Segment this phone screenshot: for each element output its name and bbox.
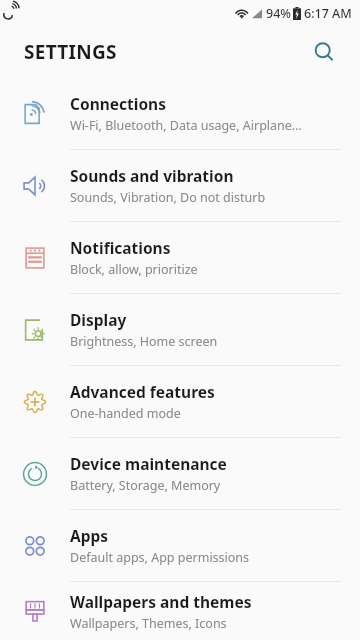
button[interactable]: Advanced features: [0, 366, 360, 437]
staticText: Wallpapers, Themes, Icons: [70, 615, 227, 632]
button[interactable]: Apps: [0, 510, 360, 581]
staticText: Battery, Storage, Memory: [70, 477, 221, 494]
button[interactable]: Device maintenance: [0, 438, 360, 509]
staticText: Brightness, Home screen: [70, 333, 218, 350]
staticText: Display: [70, 309, 127, 330]
button[interactable]: Connections: [0, 78, 360, 149]
staticText: Apps: [70, 525, 109, 546]
staticText: Connections: [70, 93, 166, 114]
staticText: Device maintenance: [70, 453, 227, 474]
staticText: SETTINGS: [24, 39, 117, 65]
button[interactable]: Sounds and vibration: [0, 150, 360, 221]
staticText: Default apps, App permissions: [70, 549, 250, 566]
staticText: Sounds, Vibration, Do not disturb: [70, 189, 266, 206]
staticText: Wallpapers and themes: [70, 591, 252, 612]
staticText: Notifications: [70, 237, 171, 258]
button[interactable]: Wallpapers and themes: [0, 582, 360, 640]
staticText: Sounds and vibration: [70, 165, 234, 186]
button[interactable]: Notifications: [0, 222, 360, 293]
staticText: One-handed mode: [70, 405, 181, 422]
button[interactable]: Search: [304, 32, 344, 72]
staticText: Wi-Fi, Bluetooth, Data usage, Airplane…: [70, 117, 302, 134]
staticText: Advanced features: [70, 381, 215, 402]
staticText: 94%: [266, 5, 291, 22]
staticText: 6:17 AM: [304, 5, 352, 22]
staticText: Block, allow, prioritize: [70, 261, 198, 278]
button[interactable]: Display: [0, 294, 360, 365]
